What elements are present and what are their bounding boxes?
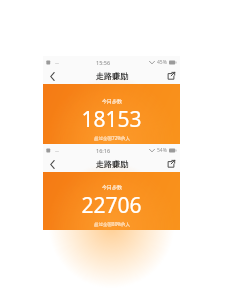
- staticText: 22706: [81, 191, 142, 220]
- button[interactable]: Back: [45, 157, 59, 171]
- button[interactable]: Share: [164, 69, 178, 83]
- button[interactable]: Back: [45, 69, 59, 83]
- staticText: 45%: [157, 59, 167, 66]
- staticText: 超过全国72%的人: [94, 135, 130, 141]
- staticText: 今日步数: [102, 184, 122, 190]
- staticText: 54%: [157, 147, 167, 154]
- staticText: 16:16: [96, 147, 111, 154]
- button[interactable]: 今日步数: [43, 172, 180, 230]
- staticText: —: [55, 60, 59, 65]
- staticText: 15:56: [96, 59, 111, 66]
- staticText: —: [55, 148, 59, 153]
- staticText: 18153: [81, 105, 142, 134]
- staticText: 超过全国80%的人: [94, 221, 130, 227]
- staticText: 走路赚励: [96, 159, 128, 169]
- staticText: 今日步数: [102, 98, 122, 104]
- button[interactable]: Share: [164, 157, 178, 171]
- button[interactable]: 今日步数: [43, 84, 180, 144]
- staticText: 走路赚励: [96, 71, 128, 81]
